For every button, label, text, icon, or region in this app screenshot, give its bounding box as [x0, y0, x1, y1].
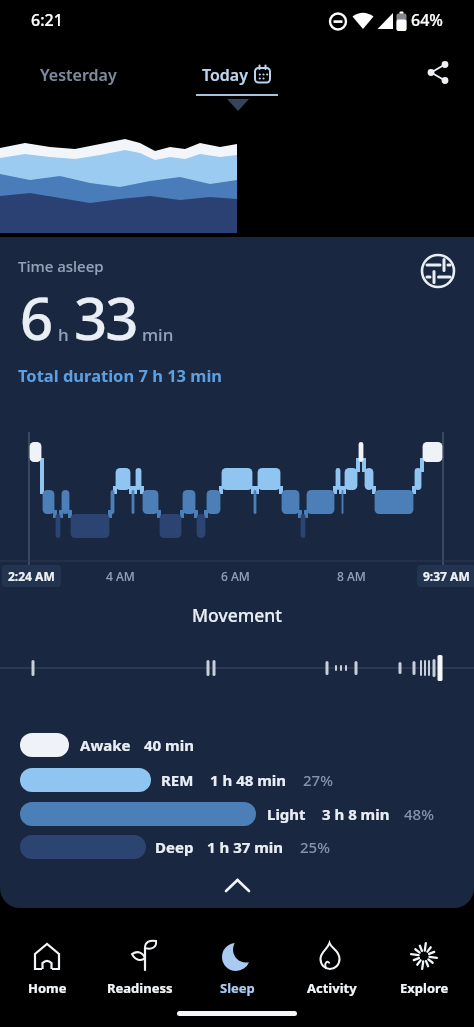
staticText: Activity [307, 979, 357, 997]
staticText: 33 [74, 278, 137, 357]
staticText: 6 AM [221, 568, 250, 584]
staticText: 27% [303, 770, 333, 790]
staticText: h [58, 323, 69, 346]
staticText: 8 AM [337, 568, 366, 584]
button[interactable]: Readiness [100, 920, 180, 1027]
staticText: Light [267, 804, 306, 824]
staticText: 6:21 [31, 9, 63, 31]
staticText: 2:24 AM [8, 568, 55, 584]
button[interactable] [420, 54, 460, 94]
button[interactable]: Sleep [200, 920, 274, 1027]
staticText: Movement [192, 603, 282, 627]
staticText: Home [28, 979, 67, 997]
button[interactable]: Yesterday [28, 58, 148, 92]
staticText: 1 h 48 min [210, 770, 287, 790]
button[interactable]: Explore [387, 920, 461, 1027]
staticText: Deep [155, 837, 194, 857]
staticText: min [142, 323, 174, 346]
staticText: Readiness [107, 979, 173, 997]
staticText: Awake [80, 735, 131, 755]
staticText: Explore [400, 979, 449, 997]
button[interactable]: Home [12, 920, 82, 1027]
staticText: 1 h 37 min [207, 837, 284, 857]
staticText: Yesterday [40, 64, 117, 86]
button[interactable] [420, 253, 458, 291]
button[interactable]: Today [196, 58, 278, 92]
staticText: 9:37 AM [423, 568, 470, 584]
button[interactable]: Activity [295, 920, 369, 1027]
staticText: REM [161, 770, 194, 790]
staticText: 6 [20, 278, 53, 357]
staticText: Time asleep [18, 256, 104, 276]
staticText: 64% [411, 9, 443, 31]
staticText: Sleep [220, 979, 255, 997]
staticText: 40 min [144, 735, 194, 755]
staticText: 4 AM [106, 568, 135, 584]
staticText: Today [202, 64, 249, 86]
staticText: 48% [404, 804, 434, 824]
staticText: Total duration 7 h 13 min [18, 364, 223, 386]
button[interactable] [217, 870, 257, 900]
staticText: 25% [300, 837, 330, 857]
staticText: 3 h 8 min [322, 804, 390, 824]
